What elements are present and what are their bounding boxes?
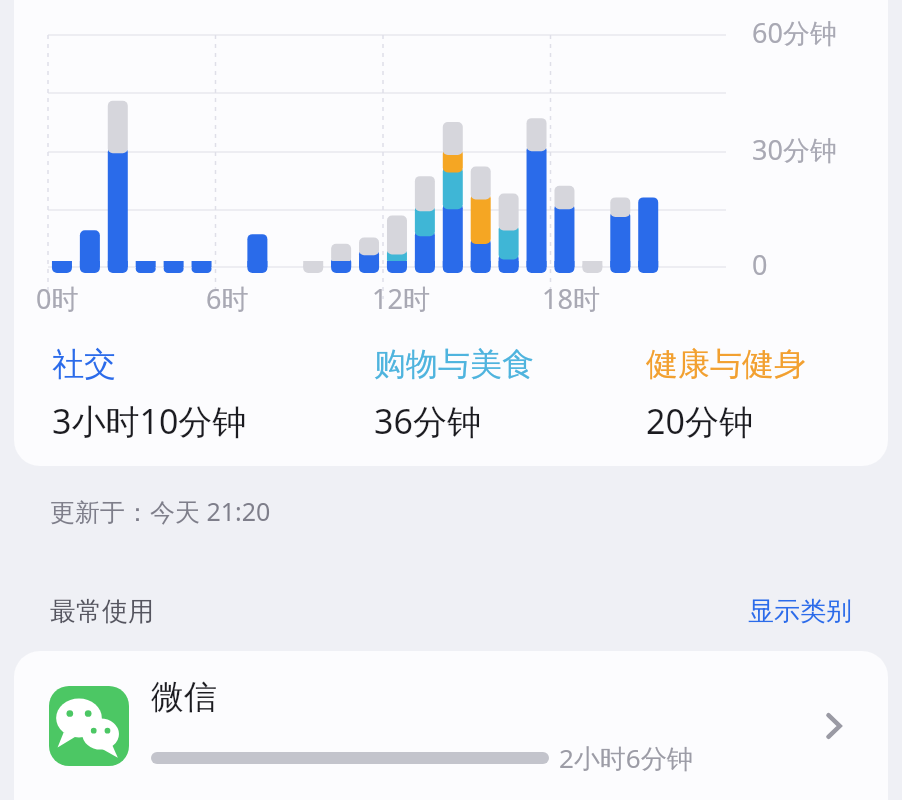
- button[interactable]: 60分钟: [14, 0, 888, 466]
- staticText: 最常使用: [50, 595, 154, 628]
- staticText: 更新于：今天 21:20: [50, 494, 271, 528]
- staticText: 社交: [52, 344, 116, 384]
- staticText: 微信: [151, 676, 217, 718]
- staticText: 36分钟: [374, 398, 481, 444]
- staticText: 显示类别: [748, 595, 852, 628]
- button[interactable]: 显示类别: [748, 595, 852, 628]
- staticText: 12时: [372, 280, 430, 317]
- button[interactable]: 健康与健身: [646, 344, 888, 444]
- staticText: 0: [752, 246, 768, 283]
- staticText: 20分钟: [646, 398, 753, 444]
- button[interactable]: 社交: [52, 344, 374, 444]
- staticText: 30分钟: [752, 131, 837, 168]
- staticText: 3小时10分钟: [52, 398, 247, 444]
- staticText: 2小时6分钟: [559, 740, 693, 776]
- button[interactable]: 购物与美食: [374, 344, 646, 444]
- staticText: 健康与健身: [646, 344, 806, 384]
- staticText: 0时: [36, 280, 79, 317]
- staticText: 购物与美食: [374, 344, 534, 384]
- staticText: 6时: [206, 280, 249, 317]
- other: 查看微信详情: [808, 698, 864, 754]
- staticText: 60分钟: [752, 14, 837, 51]
- button[interactable]: 微信: [14, 651, 888, 800]
- staticText: 18时: [542, 280, 600, 317]
